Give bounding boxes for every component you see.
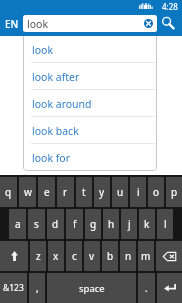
- staticText: g: [90, 217, 97, 231]
- staticText: q: [5, 185, 12, 199]
- staticText: .: [145, 281, 148, 295]
- button[interactable]: n: [120, 241, 136, 271]
- button[interactable]: .: [138, 273, 155, 303]
- button[interactable]: m: [138, 241, 154, 271]
- staticText: c: [72, 249, 77, 263]
- button[interactable]: l: [157, 209, 173, 239]
- staticText: EN: [5, 17, 19, 31]
- staticText: look after: [32, 70, 80, 84]
- button[interactable]: r: [57, 177, 74, 207]
- button[interactable]: Shift: [0, 241, 28, 271]
- button[interactable]: o: [148, 177, 164, 207]
- staticText: d: [52, 217, 59, 231]
- other: Status icons: [139, 3, 153, 9]
- button[interactable]: u: [112, 177, 128, 207]
- staticText: e: [44, 185, 50, 199]
- staticText: n: [125, 249, 132, 263]
- staticText: look: [27, 17, 49, 31]
- staticText: z: [36, 249, 41, 263]
- staticText: b: [107, 249, 114, 263]
- staticText: look: [32, 43, 54, 57]
- button[interactable]: q: [0, 177, 17, 207]
- button[interactable]: v: [84, 241, 100, 271]
- staticText: space: [79, 282, 105, 295]
- button[interactable]: e: [38, 177, 55, 207]
- button[interactable]: space: [47, 273, 136, 303]
- button[interactable]: c: [66, 241, 82, 271]
- button[interactable]: look after: [23, 63, 157, 90]
- button[interactable]: b: [102, 241, 118, 271]
- staticText: &123: [3, 282, 24, 294]
- staticText: r: [63, 185, 68, 199]
- staticText: ,: [36, 281, 39, 295]
- staticText: a: [15, 217, 21, 231]
- button[interactable]: &123: [0, 273, 27, 303]
- button[interactable]: Backspace: [156, 241, 182, 271]
- button[interactable]: EN: [5, 15, 23, 32]
- button[interactable]: Search: [158, 14, 178, 32]
- staticText: j: [128, 217, 131, 231]
- button[interactable]: g: [85, 209, 101, 239]
- button[interactable]: h: [103, 209, 119, 239]
- staticText: look for: [32, 151, 71, 165]
- button[interactable]: look for: [23, 144, 157, 171]
- staticText: 4:28: [162, 1, 178, 12]
- button[interactable]: Clear text: [144, 19, 153, 28]
- staticText: v: [89, 249, 95, 263]
- staticText: h: [108, 217, 115, 231]
- staticText: m: [141, 249, 151, 263]
- staticText: t: [82, 185, 86, 199]
- staticText: o: [153, 185, 160, 199]
- button[interactable]: y: [94, 177, 110, 207]
- staticText: f: [73, 217, 77, 231]
- staticText: x: [53, 249, 59, 263]
- button[interactable]: x: [48, 241, 64, 271]
- button[interactable]: ,: [29, 273, 45, 303]
- button[interactable]: f: [66, 209, 83, 239]
- button[interactable]: t: [76, 177, 92, 207]
- staticText: look back: [32, 124, 79, 138]
- staticText: p: [171, 185, 178, 199]
- button[interactable]: look around: [23, 90, 157, 117]
- button[interactable]: w: [19, 177, 36, 207]
- button[interactable]: i: [130, 177, 146, 207]
- button[interactable]: z: [30, 241, 46, 271]
- button[interactable]: p: [166, 177, 182, 207]
- button[interactable]: k: [139, 209, 155, 239]
- button[interactable]: look: [23, 36, 157, 63]
- button[interactable]: look back: [23, 117, 157, 144]
- button[interactable]: s: [28, 209, 45, 239]
- button[interactable]: j: [121, 209, 137, 239]
- staticText: s: [34, 217, 39, 231]
- button[interactable]: d: [47, 209, 64, 239]
- staticText: look around: [32, 97, 92, 111]
- staticText: i: [137, 185, 140, 199]
- staticText: w: [24, 185, 32, 199]
- button[interactable]: a: [9, 209, 26, 239]
- staticText: k: [144, 217, 150, 231]
- button[interactable]: look: [23, 15, 157, 32]
- staticText: y: [99, 185, 105, 199]
- button[interactable]: Enter: [157, 273, 182, 303]
- staticText: u: [117, 185, 124, 199]
- staticText: l: [164, 217, 167, 231]
